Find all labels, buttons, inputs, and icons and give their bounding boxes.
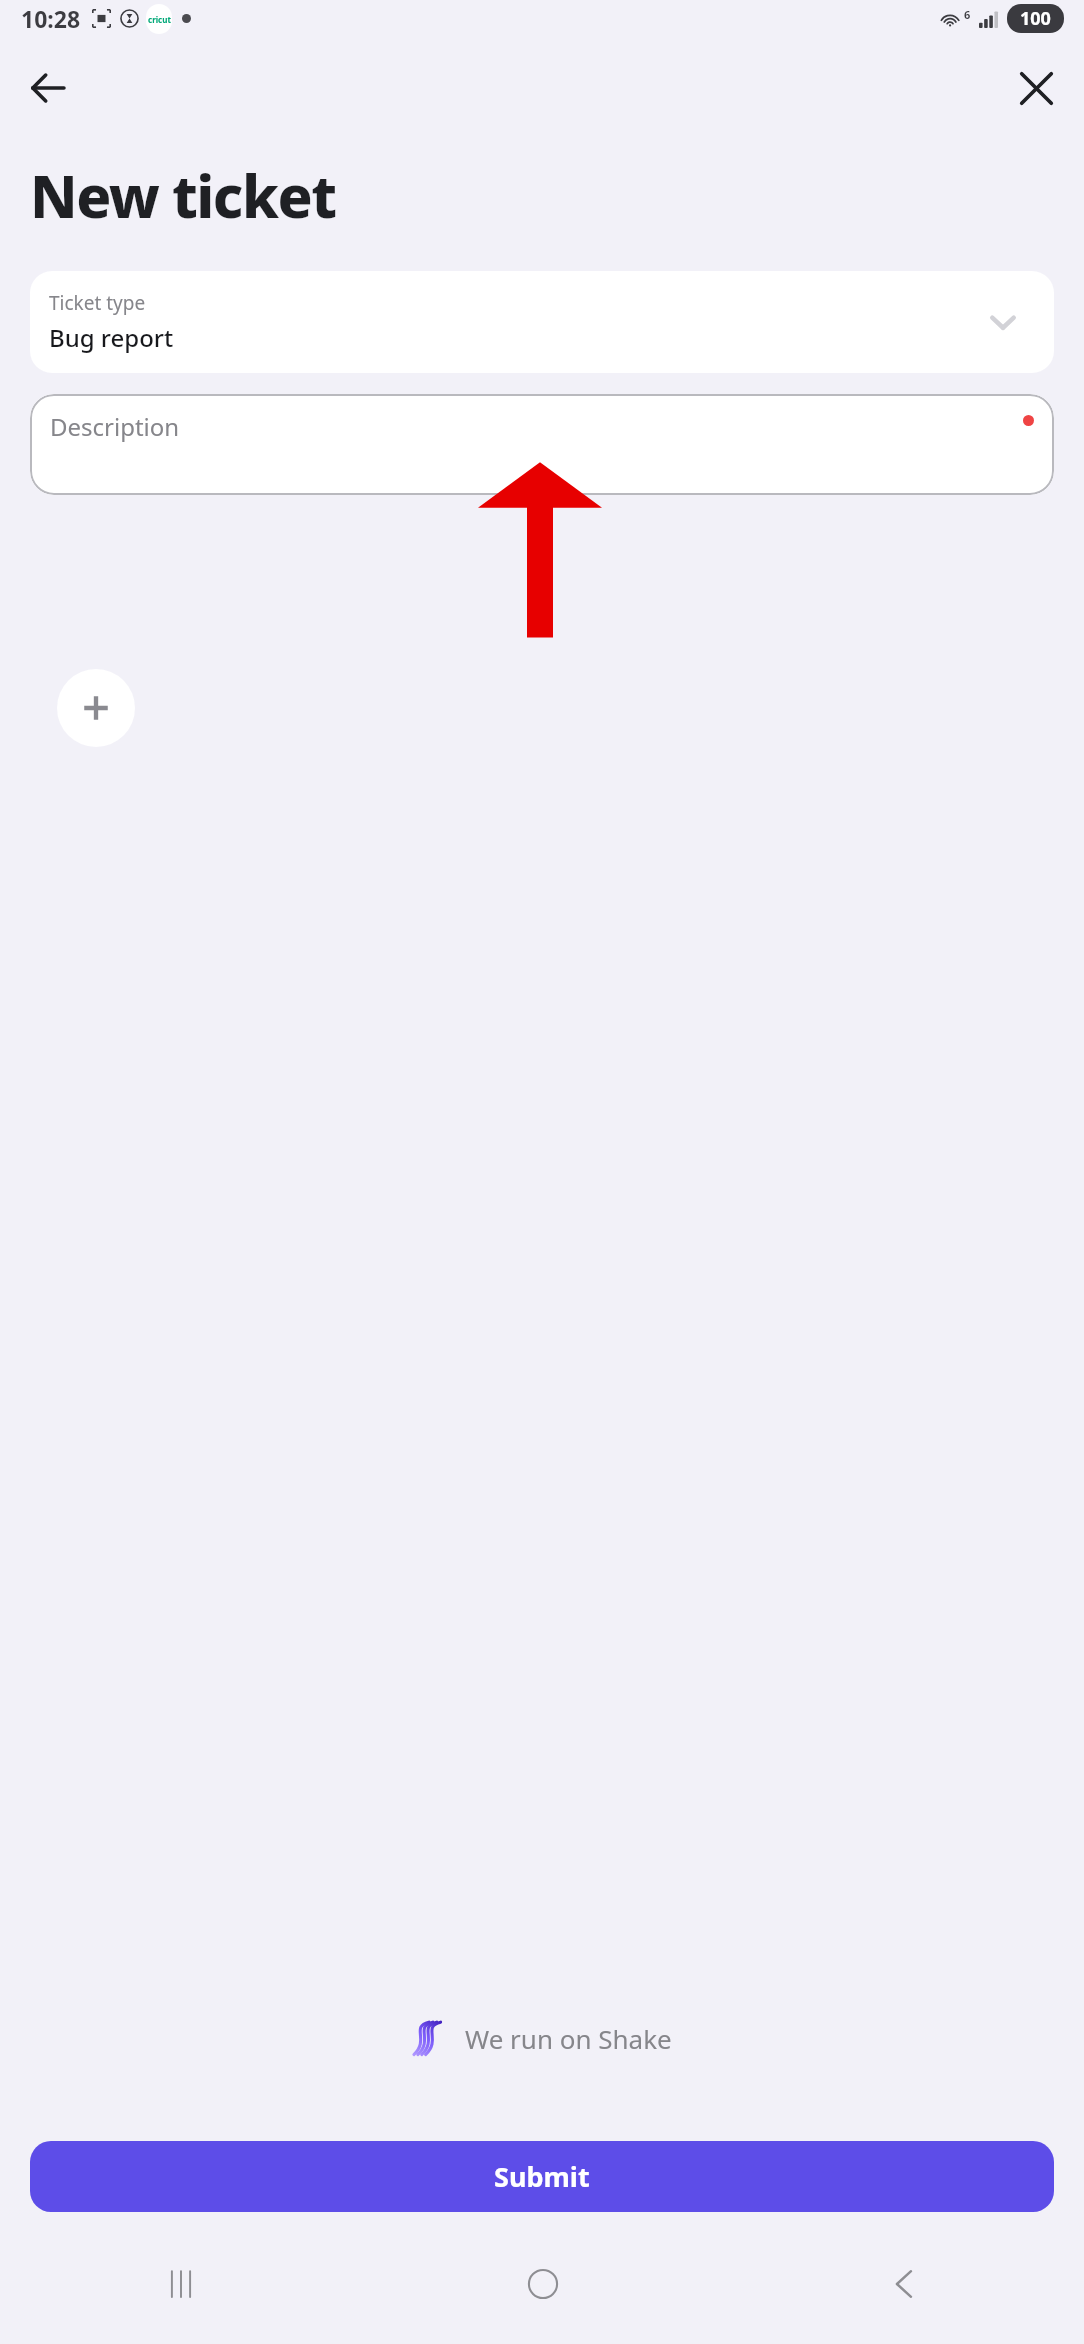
staticText: cricut xyxy=(148,14,171,25)
button[interactable]: Submit xyxy=(30,2141,1054,2212)
staticText: Bug report xyxy=(49,321,174,354)
staticText: 10:28 xyxy=(21,3,81,34)
button[interactable]: Back xyxy=(8,48,88,128)
button[interactable]: Home xyxy=(362,2246,723,2322)
button[interactable]: Back xyxy=(723,2246,1084,2322)
staticText: Ticket type xyxy=(49,290,146,316)
button[interactable]: Ticket type xyxy=(30,271,1054,373)
button[interactable]: Add attachment xyxy=(57,669,135,747)
staticText: New ticket xyxy=(30,156,336,235)
button[interactable]: Recents xyxy=(0,2246,362,2322)
button[interactable]: We run on Shake xyxy=(0,2020,1084,2056)
staticText: 6 xyxy=(964,7,971,22)
staticText: Submit xyxy=(494,2158,590,2195)
staticText: 100 xyxy=(1020,6,1051,31)
button[interactable]: Close xyxy=(996,48,1076,128)
staticText: We run on Shake xyxy=(465,2021,672,2056)
staticText: Description xyxy=(50,410,180,443)
button[interactable]: Description xyxy=(30,394,1054,495)
